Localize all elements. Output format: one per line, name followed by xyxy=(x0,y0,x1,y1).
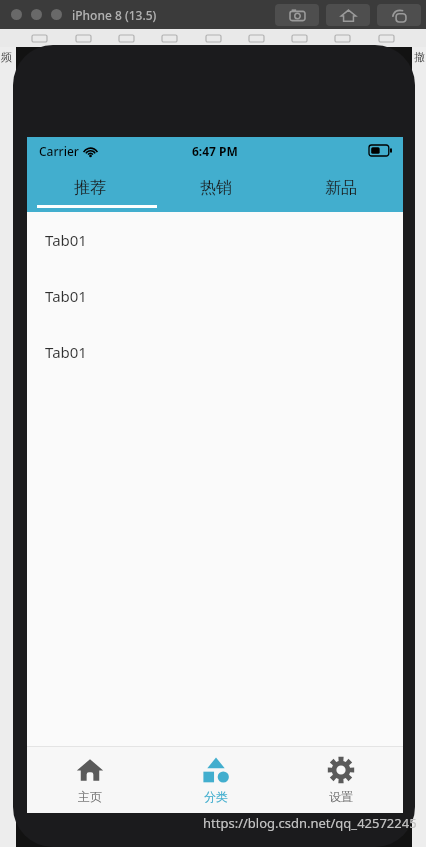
staticText: 撤 xyxy=(414,50,425,64)
staticText: 热销 xyxy=(200,178,232,198)
button[interactable]: 设置 xyxy=(278,747,403,813)
button[interactable]: 推荐 xyxy=(27,164,153,212)
button[interactable]: Rotate xyxy=(377,4,421,26)
staticText: 分类 xyxy=(204,789,228,804)
button[interactable]: Window control xyxy=(51,9,62,20)
button[interactable]: 分类 xyxy=(153,747,278,813)
button[interactable]: Home xyxy=(326,4,370,26)
staticText: https://blog.csdn.net/qq_42572245 xyxy=(203,814,417,832)
button[interactable]: Window control xyxy=(31,9,42,20)
staticText: 设置 xyxy=(329,789,353,804)
button[interactable]: 主页 xyxy=(27,747,153,813)
staticText: 新品 xyxy=(325,178,357,198)
button[interactable]: 新品 xyxy=(278,164,403,212)
staticText: 主页 xyxy=(78,789,102,804)
staticText: 6:47 PM xyxy=(192,143,238,159)
button[interactable]: Tab01 xyxy=(27,324,403,380)
button[interactable]: Take screenshot xyxy=(275,4,319,26)
button[interactable]: Tab01 xyxy=(27,268,403,324)
staticText: 推荐 xyxy=(74,178,106,198)
button[interactable]: Window control xyxy=(11,9,22,20)
staticText: Tab01 xyxy=(45,230,87,250)
staticText: Tab01 xyxy=(45,342,87,362)
staticText: Carrier xyxy=(39,143,79,159)
staticText: Tab01 xyxy=(45,286,87,306)
button[interactable]: Tab01 xyxy=(27,212,403,268)
staticText: iPhone 8 (13.5) xyxy=(72,7,157,23)
button[interactable]: 热销 xyxy=(153,164,278,212)
staticText: 频 xyxy=(1,50,12,64)
